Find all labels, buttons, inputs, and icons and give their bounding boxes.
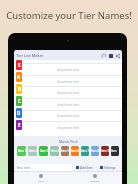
button[interactable]: Tier E xyxy=(16,120,22,130)
button[interactable]: drop items here xyxy=(14,65,122,74)
button[interactable]: drop items here xyxy=(14,100,122,109)
staticText: Item 5 xyxy=(61,149,69,153)
staticText: Customize your Tier Names! xyxy=(0,9,138,22)
staticText: Item 3 xyxy=(40,149,48,153)
staticText: New item xyxy=(16,166,31,170)
staticText: Item 6 xyxy=(71,149,79,153)
button[interactable]: Tier B xyxy=(16,84,22,94)
button[interactable]: Tiers xyxy=(14,172,68,184)
button[interactable]: Item 2 xyxy=(28,146,37,156)
staticText: drop items here xyxy=(57,103,80,107)
staticText: C xyxy=(18,98,21,104)
staticText: Item 4 xyxy=(51,149,59,153)
button[interactable]: Item 9 xyxy=(101,146,109,156)
button[interactable]: drop items here xyxy=(14,88,122,97)
staticText: Item 2 xyxy=(29,149,37,153)
button[interactable]: Tier D xyxy=(16,108,22,118)
button[interactable]: drop items here xyxy=(14,123,122,132)
staticText: Match Pool xyxy=(59,139,78,144)
button[interactable]: Settings xyxy=(68,172,122,184)
staticText: Tier List Maker xyxy=(16,53,44,58)
staticText: Settings xyxy=(104,166,116,170)
staticText: S xyxy=(18,62,21,68)
button[interactable]: Item 3 xyxy=(39,146,48,156)
staticText: drop items here xyxy=(57,68,80,72)
staticText: Add Item xyxy=(80,166,93,170)
button[interactable]: Item 5 xyxy=(61,146,69,156)
staticText: A xyxy=(17,74,21,80)
button[interactable]: Save xyxy=(107,52,114,59)
button[interactable]: Add Item xyxy=(72,164,96,171)
button[interactable]: New item xyxy=(16,164,72,171)
button[interactable]: drop items here xyxy=(14,111,122,120)
staticText: Item 1 xyxy=(18,149,26,153)
button[interactable]: drop items here xyxy=(14,77,122,86)
staticText: D xyxy=(17,110,21,116)
staticText: Tiers xyxy=(38,179,44,182)
staticText: Item 10 xyxy=(111,149,119,153)
staticText: Item 9 xyxy=(101,149,109,153)
button[interactable]: Undo xyxy=(100,52,107,59)
button[interactable]: Settings xyxy=(96,164,120,171)
button[interactable]: Item 6 xyxy=(71,146,79,156)
staticText: Item 8 xyxy=(91,149,99,153)
button[interactable]: Tier C xyxy=(16,96,22,106)
button[interactable]: Tier A xyxy=(16,72,22,82)
button[interactable]: Item 10 xyxy=(111,146,119,156)
staticText: E xyxy=(18,122,21,128)
button[interactable]: Item 8 xyxy=(91,146,99,156)
button[interactable]: Item 1 xyxy=(17,146,26,156)
button[interactable]: Item 4 xyxy=(50,146,59,156)
staticText: drop items here xyxy=(57,91,80,95)
staticText: drop items here xyxy=(57,126,80,130)
staticText: drop items here xyxy=(57,80,80,84)
button[interactable]: Share xyxy=(114,52,121,59)
staticText: drop items here xyxy=(57,114,80,118)
button[interactable]: Item 7 xyxy=(81,146,89,156)
button[interactable]: Tier S xyxy=(16,60,22,70)
staticText: Item 7 xyxy=(81,149,89,153)
staticText: Settings xyxy=(90,179,100,182)
staticText: B xyxy=(18,86,21,92)
